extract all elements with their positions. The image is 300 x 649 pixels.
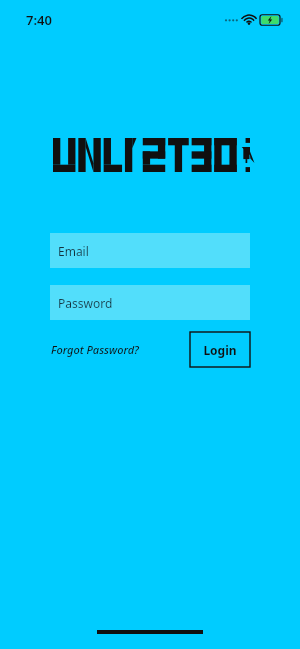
- staticText: Email: [58, 243, 89, 259]
- staticText: Login: [203, 342, 237, 358]
- other: Unlisted logo: [53, 138, 250, 172]
- staticText: Password: [58, 295, 113, 311]
- button[interactable]: Login: [190, 332, 250, 367]
- staticText: 7:40: [26, 11, 52, 29]
- button[interactable]: Email: [50, 233, 250, 268]
- staticText: Forgot Password?: [51, 342, 139, 357]
- button[interactable]: Forgot Password?: [50, 338, 140, 361]
- button[interactable]: Password: [50, 285, 250, 320]
